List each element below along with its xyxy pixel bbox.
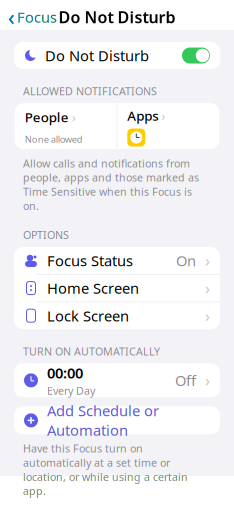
button[interactable]: Focus Status (14, 247, 220, 275)
staticText: Have this Focus turn on automatically at… (23, 441, 188, 498)
staticText: › (72, 108, 76, 126)
staticText: Do Not Disturb (45, 46, 149, 65)
button[interactable]: 00:00 (14, 363, 220, 397)
staticText: None allowed (25, 133, 83, 145)
button[interactable]: People (15, 103, 117, 149)
button[interactable]: Do Not Disturb (14, 42, 220, 69)
staticText: › (161, 107, 165, 124)
staticText: Home Screen (47, 278, 139, 298)
staticText: › (205, 277, 210, 299)
staticText: People (25, 108, 69, 126)
button[interactable]: Apps (117, 103, 219, 149)
staticText: › (205, 250, 210, 271)
button[interactable]: Add Schedule or Automation (14, 406, 220, 434)
staticText: OPTIONS (23, 228, 69, 242)
button[interactable]: Lock Screen (14, 302, 220, 329)
staticText: ‹ (8, 3, 15, 31)
staticText: Off (175, 371, 196, 390)
staticText: ALLOWED NOTIFICATIONS (23, 84, 157, 98)
staticText: Apps (127, 107, 158, 124)
button[interactable]: ‹ (0, 0, 65, 34)
staticText: Focus (17, 7, 57, 27)
staticText: › (205, 305, 210, 326)
staticText: Add Schedule or Automation (47, 401, 159, 440)
staticText: Every Day (47, 383, 95, 398)
staticText: Allow calls and notifications from peopl… (23, 156, 199, 213)
staticText: On (176, 251, 196, 270)
staticText: TURN ON AUTOMATICALLY (23, 344, 160, 358)
staticText: 00:00 (47, 363, 83, 382)
staticText: Focus Status (47, 251, 133, 270)
staticText: › (205, 370, 210, 391)
staticText: Lock Screen (47, 306, 129, 325)
button[interactable]: Home Screen (14, 275, 220, 302)
